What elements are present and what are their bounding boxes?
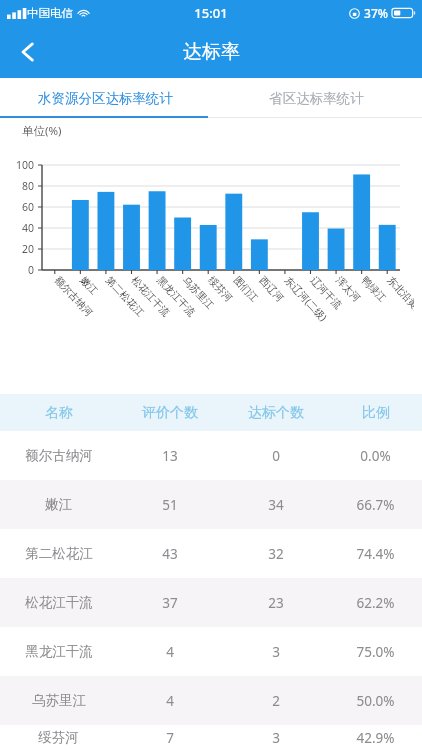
staticText: 省区达标率统计	[269, 90, 364, 107]
staticText: 4	[166, 643, 174, 661]
staticText: 达标率	[183, 40, 240, 64]
staticText: 2	[272, 692, 280, 710]
staticText: 75.0%	[356, 643, 395, 661]
staticText: 7	[166, 729, 174, 747]
staticText: 名称	[45, 404, 73, 422]
staticText: 3	[272, 643, 280, 661]
staticText: 74.4%	[356, 545, 395, 563]
staticText: 62.2%	[356, 594, 395, 612]
staticText: 32	[268, 545, 284, 563]
button[interactable]: 黑龙江干流	[0, 627, 422, 676]
staticText: 15:01	[194, 4, 228, 22]
button[interactable]: 第二松花江	[0, 529, 422, 578]
staticText: 0	[272, 447, 280, 465]
staticText: 第二松花江	[25, 545, 93, 562]
staticText: 3	[272, 729, 280, 747]
staticText: 66.7%	[356, 496, 395, 514]
staticText: 绥芬河	[38, 729, 79, 746]
staticText: 松花江干流	[25, 594, 93, 611]
staticText: 中国电信	[27, 6, 73, 20]
staticText: 13	[162, 447, 178, 465]
staticText: 4	[166, 692, 174, 710]
button[interactable]: 绥芬河	[0, 725, 422, 750]
staticText: 评价个数	[142, 404, 198, 422]
staticText: 比例	[362, 404, 390, 422]
staticText: 乌苏里江	[32, 692, 86, 709]
staticText: 37%	[364, 5, 388, 21]
staticText: 42.9%	[356, 729, 395, 747]
button[interactable]: 松花江干流	[0, 578, 422, 627]
staticText: 嫩江	[45, 496, 72, 513]
staticText: 37	[162, 594, 178, 612]
staticText: 51	[162, 496, 178, 514]
staticText: 34	[268, 496, 284, 514]
staticText: 额尔古纳河	[25, 447, 93, 464]
button[interactable]: 水资源分区达标率统计	[0, 78, 211, 118]
button[interactable]: 乌苏里江	[0, 676, 422, 725]
staticText: 50.0%	[356, 692, 395, 710]
staticText: 水资源分区达标率统计	[38, 90, 173, 107]
button[interactable]: 省区达标率统计	[211, 78, 422, 118]
staticText: 达标个数	[248, 404, 304, 422]
staticText: 黑龙江干流	[25, 643, 93, 660]
button[interactable]: Back	[6, 30, 50, 74]
button[interactable]: 嫩江	[0, 480, 422, 529]
staticText: 23	[268, 594, 284, 612]
staticText: 43	[162, 545, 178, 563]
button[interactable]: 额尔古纳河	[0, 431, 422, 480]
staticText: 0.0%	[360, 447, 391, 465]
